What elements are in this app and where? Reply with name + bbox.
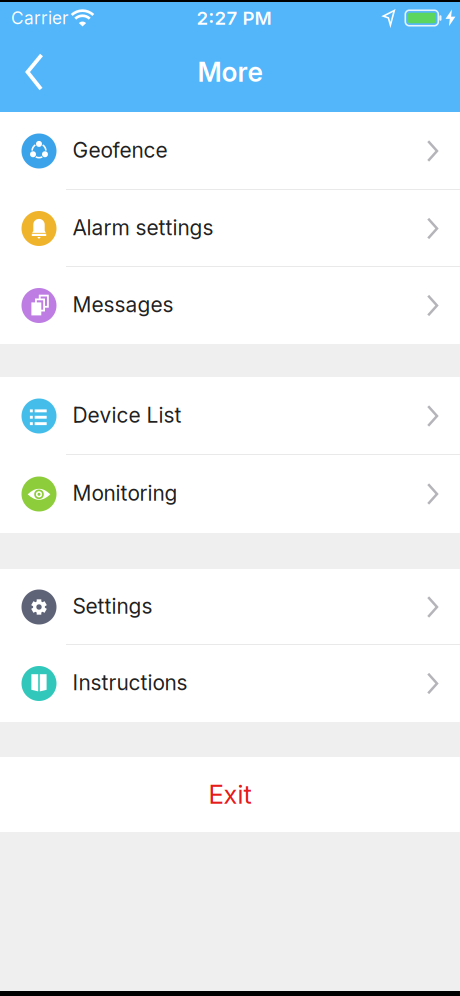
button[interactable]: Alarm settings [0,190,460,267]
staticText: Alarm settings [72,215,213,240]
staticText: Exit [208,779,251,810]
staticText: More [197,56,262,88]
button[interactable]: Instructions [0,645,460,722]
staticText: Carrier [11,8,68,28]
staticText: Geofence [72,137,167,163]
button[interactable]: Monitoring [0,455,460,533]
staticText: Instructions [72,670,187,695]
button[interactable]: Geofence [0,112,460,190]
staticText: Settings [72,593,152,619]
staticText: 2:27 PM [196,7,271,29]
button[interactable]: Back [0,53,43,90]
button[interactable]: Exit [0,757,460,832]
button[interactable]: Settings [0,569,460,645]
button[interactable]: Device List [0,377,460,455]
staticText: Device List [72,402,181,428]
button[interactable]: Messages [0,267,460,344]
staticText: Messages [72,292,173,317]
staticText: Monitoring [72,480,177,506]
